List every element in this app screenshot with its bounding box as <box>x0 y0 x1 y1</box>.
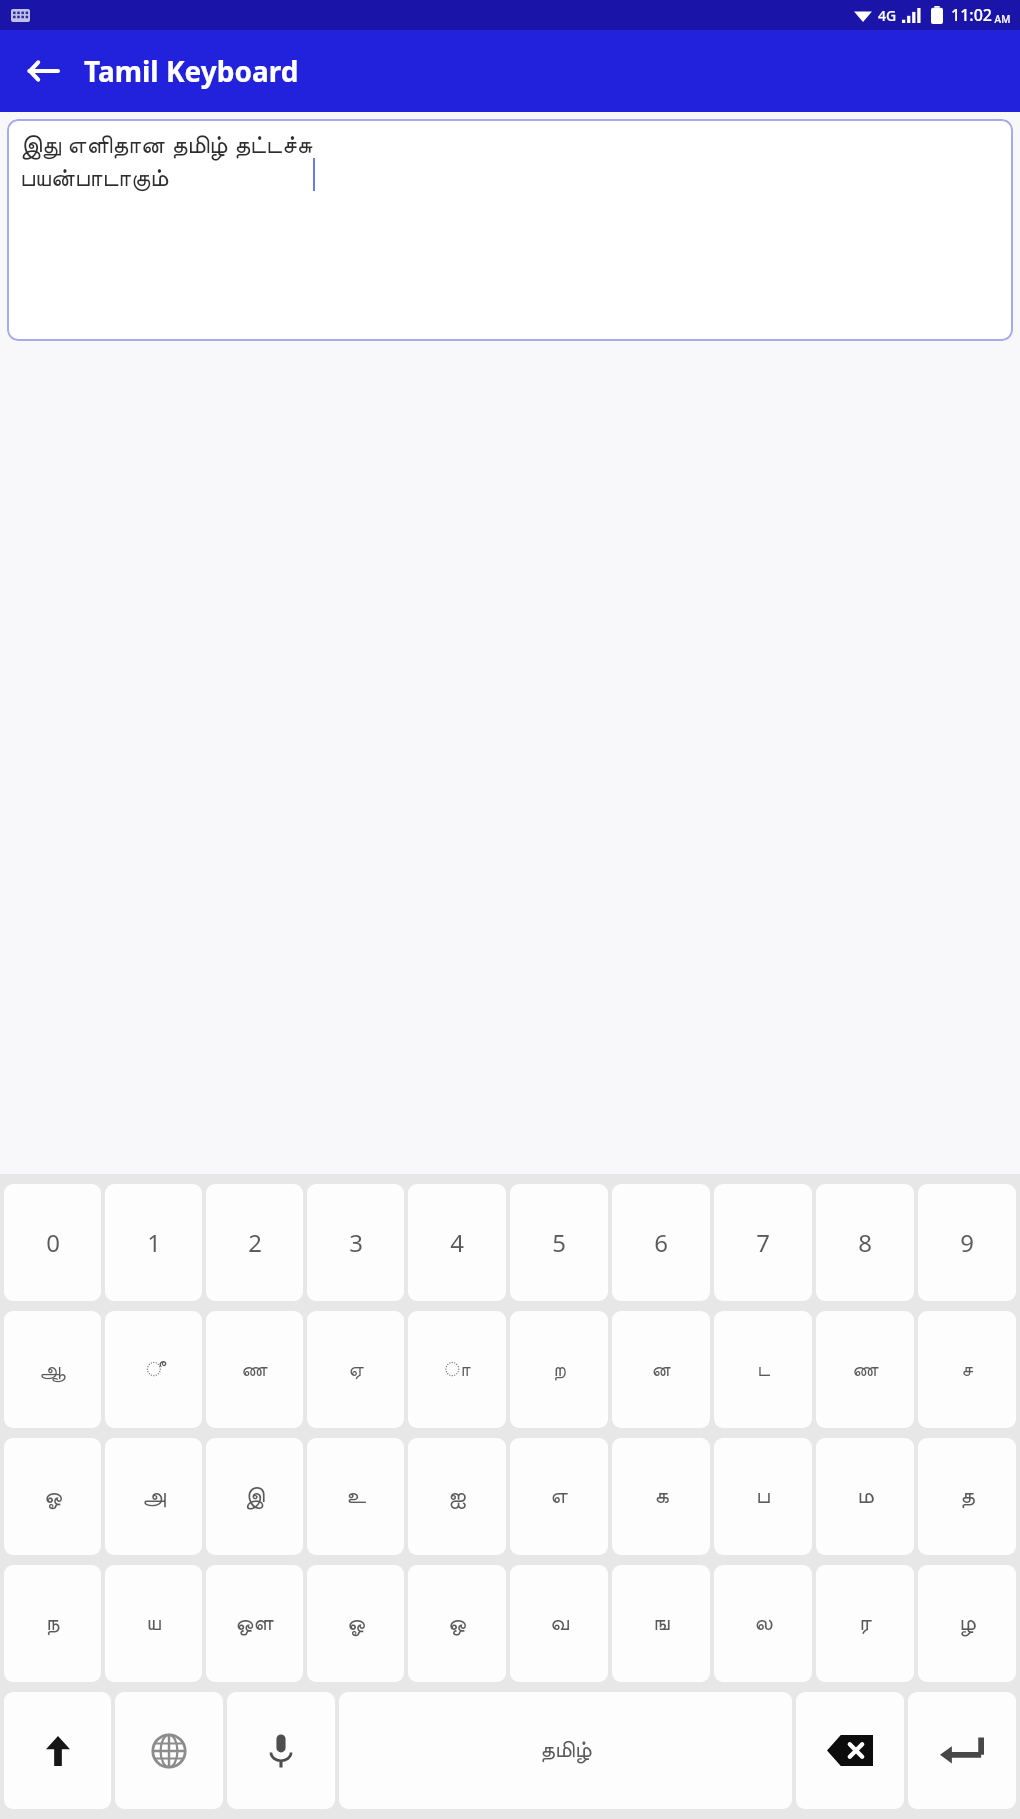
button[interactable]: ம <box>816 1438 914 1555</box>
staticText: 2 <box>248 1226 262 1259</box>
button[interactable]: 8 <box>816 1184 914 1301</box>
button[interactable]: Shift <box>4 1692 111 1809</box>
staticText: ர <box>859 1612 872 1635</box>
button[interactable]: அ <box>105 1438 202 1555</box>
button[interactable]: ஓ <box>4 1438 101 1555</box>
staticText: ங <box>653 1612 670 1635</box>
button[interactable]: ழ <box>918 1565 1016 1682</box>
button[interactable]: 1 <box>105 1184 202 1301</box>
staticText: 11:02 <box>951 4 992 26</box>
staticText: ல <box>754 1612 773 1635</box>
button[interactable]: வ <box>510 1565 608 1682</box>
button[interactable]: ப <box>714 1438 812 1555</box>
staticText: ண <box>852 1360 879 1380</box>
button[interactable]: உ <box>307 1438 404 1555</box>
button[interactable]: 2 <box>206 1184 303 1301</box>
staticText: 8 <box>858 1226 872 1259</box>
staticText: ப <box>756 1485 770 1508</box>
button[interactable]: எ <box>510 1438 608 1555</box>
staticText: 4G <box>878 6 897 25</box>
staticText: ஏ <box>348 1360 364 1380</box>
staticText: உ <box>346 1485 366 1508</box>
staticText: ஆ <box>39 1360 66 1380</box>
button[interactable]: தமிழ் <box>339 1692 792 1809</box>
button[interactable]: 9 <box>918 1184 1016 1301</box>
staticText: வ <box>550 1612 569 1635</box>
staticText: ற <box>553 1360 566 1380</box>
button[interactable]: 0 <box>4 1184 101 1301</box>
button[interactable]: 6 <box>612 1184 710 1301</box>
staticText: ன <box>651 1360 671 1380</box>
button[interactable]: ண <box>206 1311 303 1428</box>
staticText: 6 <box>654 1226 668 1259</box>
button[interactable]: 4 <box>408 1184 506 1301</box>
staticText: ச <box>961 1360 973 1380</box>
staticText: ா <box>444 1360 471 1380</box>
staticText: அ <box>142 1485 166 1508</box>
button[interactable]: 3 <box>307 1184 404 1301</box>
button[interactable]: Back <box>12 41 72 101</box>
button[interactable]: ச <box>918 1311 1016 1428</box>
staticText: 4 <box>450 1226 464 1259</box>
staticText: 5 <box>552 1226 566 1259</box>
button[interactable]: ஒள <box>206 1565 303 1682</box>
button[interactable]: ஒ <box>408 1565 506 1682</box>
button[interactable]: Backspace <box>796 1692 904 1809</box>
staticText: இது எளிதான தமிழ் தட்டச்சு பயன்பாடாகும் <box>20 126 313 191</box>
button[interactable]: ஆ <box>4 1311 101 1428</box>
staticText: ஒ <box>448 1612 466 1635</box>
staticText: ஐ <box>448 1485 466 1508</box>
staticText: 7 <box>756 1226 770 1259</box>
staticText: ந <box>45 1612 60 1635</box>
button[interactable]: த <box>918 1438 1016 1555</box>
button[interactable]: க <box>612 1438 710 1555</box>
staticText: 3 <box>349 1226 363 1259</box>
staticText: ஓ <box>44 1485 62 1508</box>
button[interactable]: ா <box>408 1311 506 1428</box>
button[interactable]: 5 <box>510 1184 608 1301</box>
button[interactable]: ர <box>816 1565 914 1682</box>
staticText: ீ <box>146 1360 162 1380</box>
button[interactable]: இ <box>206 1438 303 1555</box>
button[interactable]: ந <box>4 1565 101 1682</box>
staticText: ட <box>757 1360 770 1380</box>
staticText: 0 <box>46 1226 60 1259</box>
button[interactable]: ற <box>510 1311 608 1428</box>
staticText: ண <box>241 1360 268 1380</box>
button[interactable]: ல <box>714 1565 812 1682</box>
staticText: Tamil Keyboard <box>84 52 299 90</box>
staticText: ம <box>857 1485 874 1508</box>
button[interactable]: ஓ <box>307 1565 404 1682</box>
staticText: AM <box>992 12 1011 26</box>
staticText: த <box>960 1485 975 1508</box>
button[interactable]: ீ <box>105 1311 202 1428</box>
button[interactable]: ஐ <box>408 1438 506 1555</box>
button[interactable]: Voice input <box>227 1692 335 1809</box>
staticText: ஒள <box>235 1612 274 1635</box>
staticText: 9 <box>960 1226 974 1259</box>
button[interactable]: Change language <box>115 1692 223 1809</box>
staticText: எ <box>550 1485 568 1508</box>
button[interactable]: ய <box>105 1565 202 1682</box>
staticText: தமிழ் <box>540 1739 592 1762</box>
button[interactable]: ஏ <box>307 1311 404 1428</box>
staticText: ழ <box>959 1612 976 1635</box>
staticText: க <box>654 1485 669 1508</box>
staticText: ய <box>146 1612 161 1635</box>
staticText: ஓ <box>347 1612 365 1635</box>
button[interactable]: 7 <box>714 1184 812 1301</box>
staticText: 1 <box>147 1226 161 1259</box>
button[interactable]: இது எளிதான தமிழ் தட்டச்சு பயன்பாடாகும் <box>7 119 1013 341</box>
staticText: இ <box>244 1485 265 1508</box>
button[interactable]: ட <box>714 1311 812 1428</box>
button[interactable]: ங <box>612 1565 710 1682</box>
button[interactable]: ன <box>612 1311 710 1428</box>
button[interactable]: ண <box>816 1311 914 1428</box>
button[interactable]: Enter <box>908 1692 1016 1809</box>
